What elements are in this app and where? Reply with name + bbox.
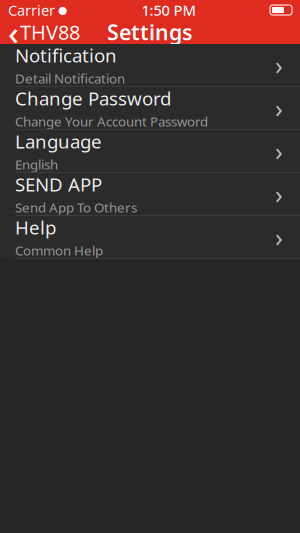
staticText: ›: [275, 177, 283, 211]
staticText: SEND APP: [15, 172, 102, 197]
staticText: Carrier: [8, 0, 55, 20]
staticText: ●: [55, 4, 67, 16]
staticText: ›: [275, 91, 283, 125]
staticText: Notification: [15, 43, 117, 68]
staticText: Detail Notification: [15, 69, 125, 87]
button[interactable]: Notification: [0, 44, 300, 87]
staticText: Language: [15, 129, 102, 154]
button[interactable]: SEND APP: [0, 173, 300, 216]
staticText: 1:50 PM: [141, 0, 195, 20]
staticText: ‹: [8, 10, 19, 54]
staticText: Change Your Account Password: [15, 112, 208, 130]
button[interactable]: Help: [0, 216, 300, 259]
button[interactable]: Language: [0, 130, 300, 173]
button[interactable]: Change Password: [0, 87, 300, 130]
staticText: THV88: [20, 19, 80, 45]
staticText: ›: [275, 134, 283, 168]
staticText: Send App To Others: [15, 198, 137, 216]
button[interactable]: ‹: [0, 20, 88, 44]
staticText: Help: [15, 215, 56, 240]
staticText: Common Help: [15, 241, 103, 259]
staticText: ›: [275, 220, 283, 254]
staticText: Change Password: [15, 86, 171, 111]
staticText: Settings: [107, 18, 193, 46]
staticText: ›: [275, 48, 283, 82]
staticText: English: [15, 155, 58, 173]
